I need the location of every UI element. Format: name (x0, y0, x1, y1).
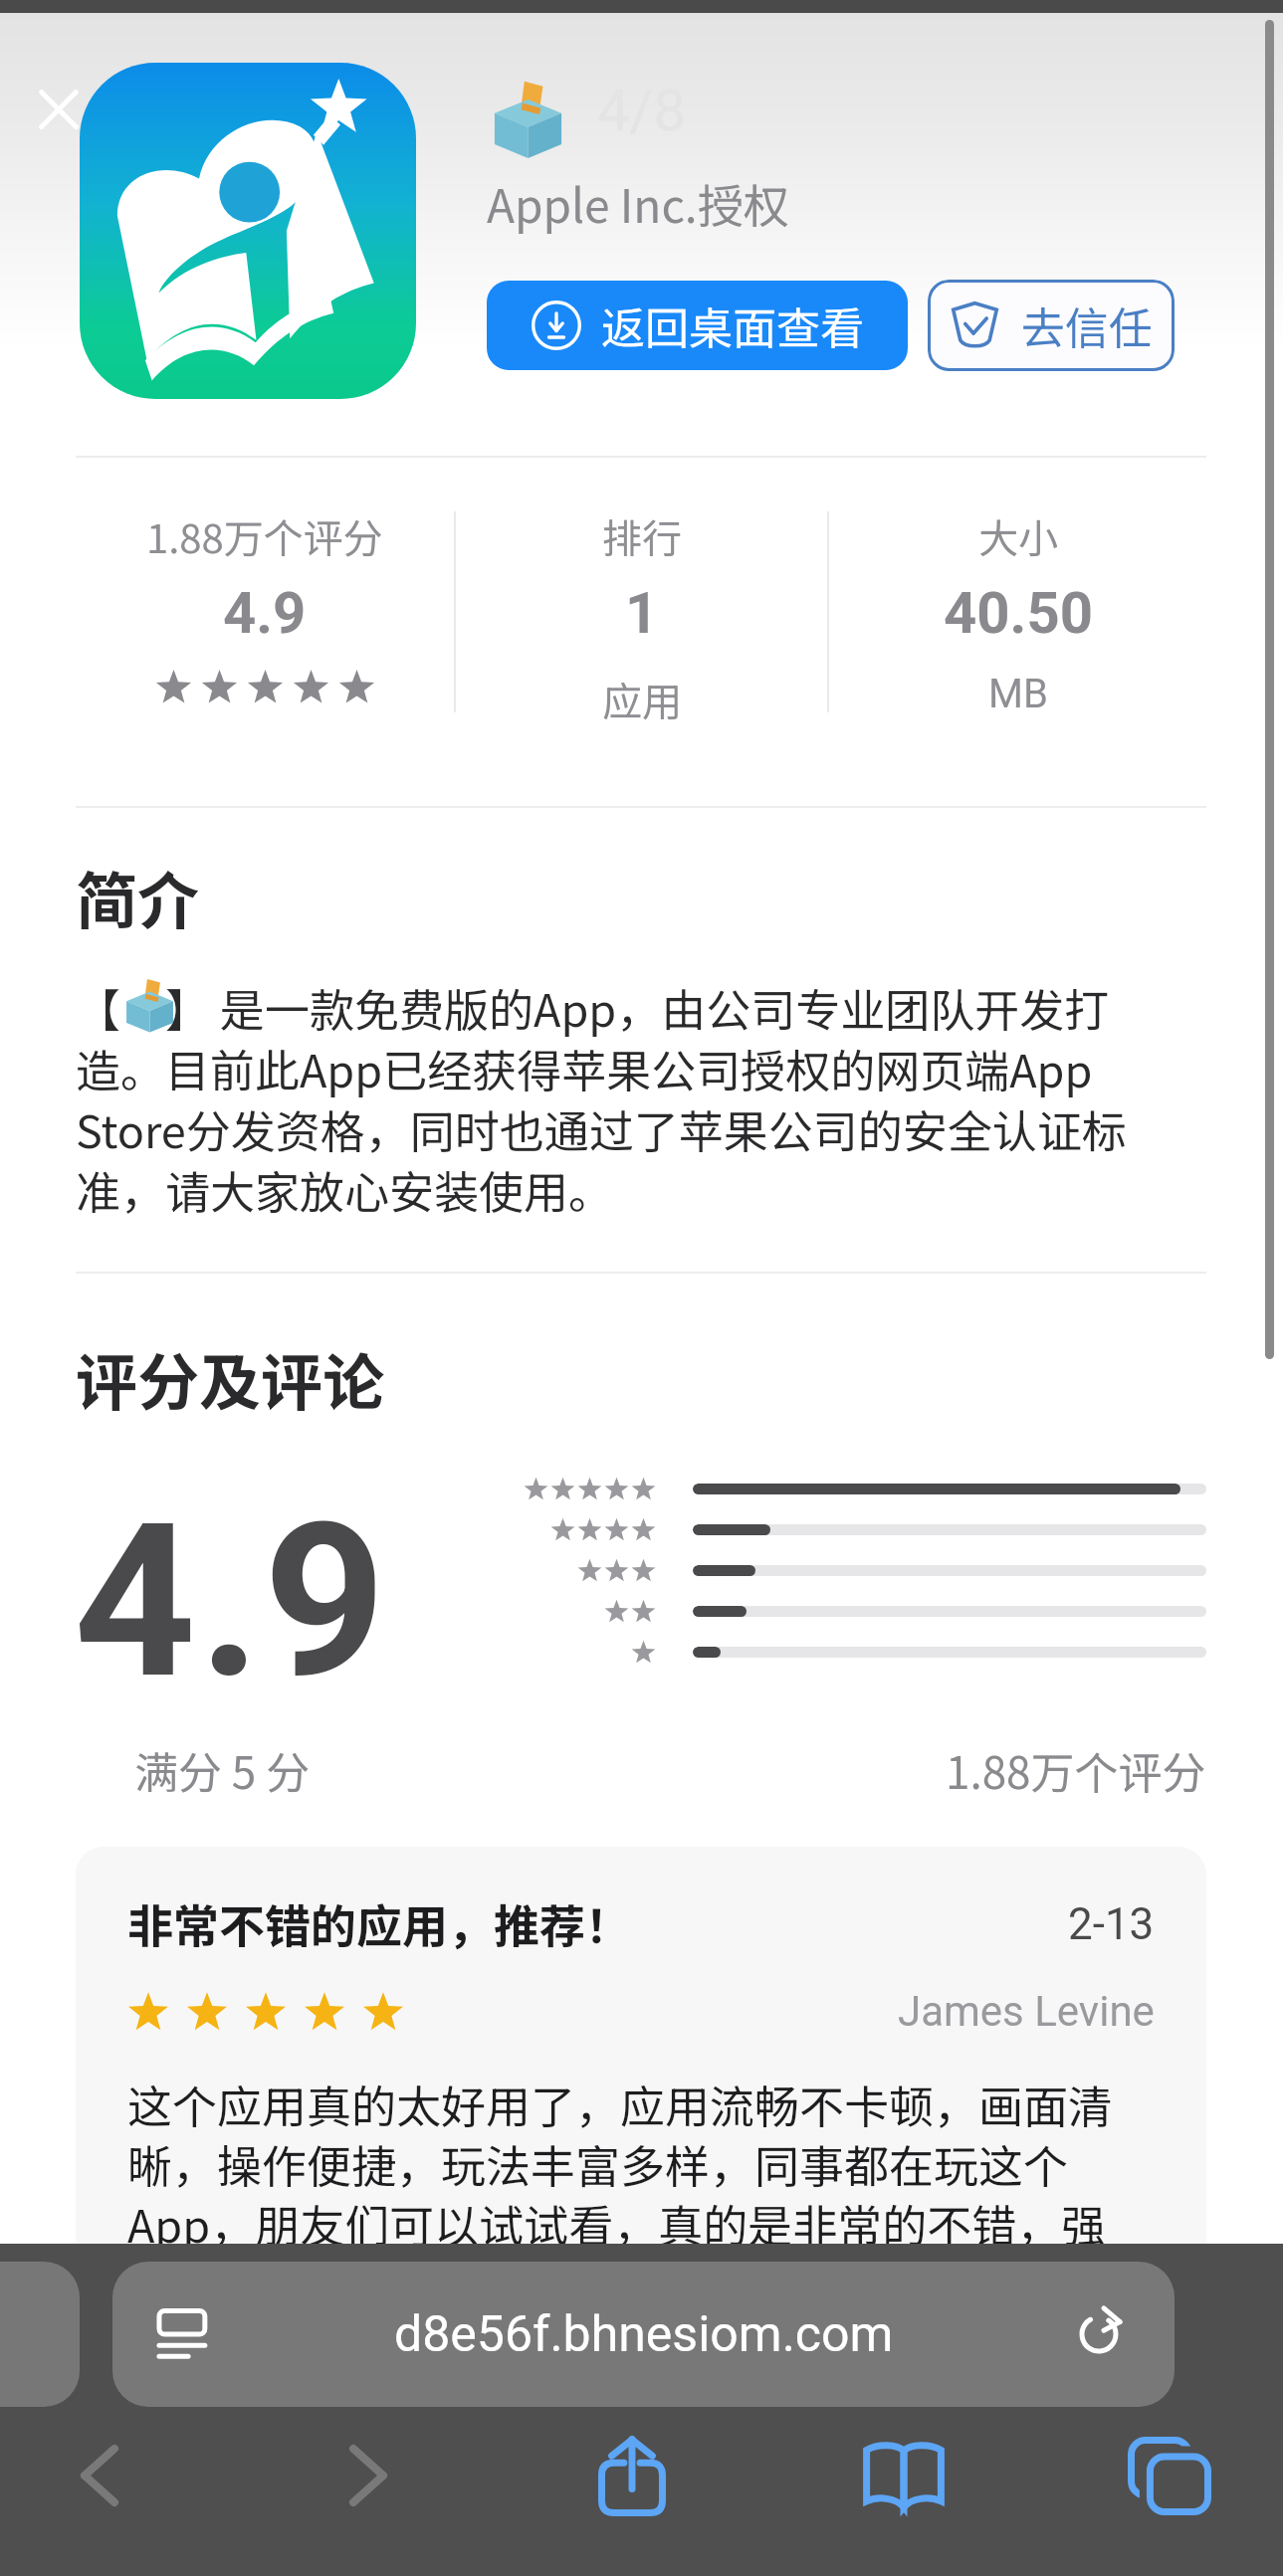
button[interactable]: App icon (80, 63, 416, 399)
other: Tabs (1128, 2437, 1211, 2515)
button[interactable]: Share (523, 2407, 742, 2576)
staticText: 满分 5 分 (134, 1738, 311, 1802)
staticText: 排行 (602, 507, 682, 565)
button[interactable]: 去信任 (928, 280, 1175, 371)
staticText: 1 (625, 579, 659, 647)
staticText: d8e56f.bhnesiom.com (394, 2305, 894, 2364)
other: Share (598, 2435, 666, 2516)
other: Bookmarks (862, 2441, 946, 2510)
staticText: 非常不错的应用，推荐！ (127, 1890, 631, 1957)
staticText: 【 】 是一款免费版的App，由公司专业团队开发打 造。目前此App已经获得苹果… (76, 975, 1127, 1222)
staticText: 40.50 (944, 579, 1093, 647)
staticText: 1.88万个评分 (146, 507, 383, 565)
button[interactable]: Reload (1068, 2303, 1130, 2365)
staticText: 返回桌面查看 (601, 294, 864, 357)
staticText: 大小 (978, 507, 1058, 565)
staticText: James Levine (898, 1987, 1155, 2036)
other: Back (81, 2445, 118, 2506)
staticText: Apple Inc.授权 (487, 170, 789, 237)
button[interactable]: d8e56f.bhnesiom.com (112, 2262, 1175, 2407)
staticText: 简介 (76, 852, 200, 941)
staticText: 评分及评论 (76, 1333, 385, 1423)
staticText: 4.9 (223, 579, 307, 647)
staticText: 1.88万个评分 (946, 1738, 1206, 1802)
staticText: 这个应用真的太好用了，应用流畅不卡顿，画面清 晰，操作便捷，玩法丰富多样，同事都… (127, 2072, 1114, 2256)
button[interactable]: Back (0, 2407, 199, 2576)
staticText: 应用 (602, 671, 682, 728)
button[interactable]: Tabs (1060, 2407, 1279, 2576)
staticText: MB (988, 671, 1048, 717)
button[interactable]: 非常不错的应用，推荐！ (76, 1847, 1206, 2284)
staticText: 2-13 (1068, 1898, 1155, 1950)
button[interactable]: Reader view (154, 2303, 216, 2365)
button[interactable]: Bookmarks (794, 2407, 1013, 2576)
button[interactable]: Forward (259, 2407, 478, 2576)
button[interactable]: 返回桌面查看 (487, 281, 908, 370)
staticText: 4.9 (74, 1477, 389, 1726)
staticText: 去信任 (1021, 294, 1153, 357)
button[interactable]: Close (30, 81, 88, 138)
other: Forward (349, 2445, 387, 2506)
